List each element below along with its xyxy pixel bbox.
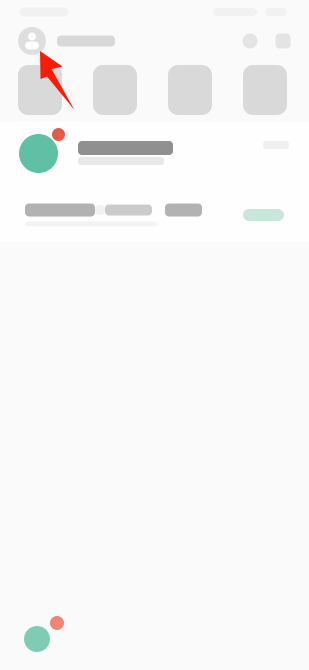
button[interactable]: Shortcut — [168, 65, 212, 115]
button[interactable]: Shortcut — [243, 65, 287, 115]
button[interactable]: Shortcut — [18, 65, 62, 115]
button[interactable]: Search — [237, 28, 263, 54]
button[interactable]: Profile — [18, 27, 46, 55]
button[interactable]: Conversation — [0, 616, 309, 662]
button[interactable]: New chat — [270, 28, 296, 54]
button[interactable] — [0, 122, 309, 188]
button[interactable] — [0, 188, 309, 242]
button[interactable]: Shortcut — [93, 65, 137, 115]
